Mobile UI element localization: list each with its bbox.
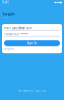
staticText: 9:41 [2, 1, 9, 4]
staticText: •••••••• [20, 32, 28, 36]
staticText: continue [3, 16, 9, 18]
staticText: Sign In [27, 41, 37, 45]
button[interactable]: No account? Sign up [0, 89, 64, 92]
staticText: Forgot? [4, 47, 14, 51]
staticText: No account? Sign up [18, 89, 46, 92]
staticText: EMAIL [4, 27, 11, 30]
button[interactable]: Forgot? [4, 47, 14, 51]
staticText: Login [3, 11, 15, 16]
staticText: PASSWORD [4, 32, 19, 36]
staticText: jane@mail.com [12, 27, 31, 30]
button[interactable]: Sign In [4, 40, 60, 46]
